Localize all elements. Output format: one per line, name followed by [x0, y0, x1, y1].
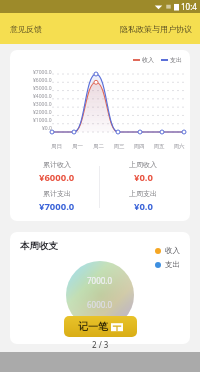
staticText: 6000.0 — [87, 299, 113, 310]
staticText: ¥6000.0 — [33, 77, 52, 85]
staticText: 收入 — [142, 56, 154, 64]
staticText: 周二 — [88, 143, 109, 150]
staticText: ¥0.0 — [134, 200, 153, 213]
staticText: 累计支出 — [43, 189, 71, 198]
staticText: ¥7000.0 — [39, 200, 75, 213]
staticText: ¥2000.0 — [33, 109, 52, 117]
staticText: 支出 — [165, 260, 180, 269]
staticText: ¥3000.0 — [33, 101, 52, 109]
staticText: ¥0.0 — [42, 125, 52, 132]
staticText: 本周收支 — [20, 240, 58, 252]
staticText: 周一 — [67, 143, 88, 150]
staticText: 周六 — [169, 143, 189, 150]
staticText: ¥4000.0 — [33, 93, 52, 101]
staticText: 周四 — [129, 143, 149, 150]
staticText: 意见反馈 — [10, 24, 42, 34]
staticText: 2 / 3 — [92, 339, 109, 350]
staticText: 周日 — [46, 143, 67, 150]
staticText: 上周收入 — [129, 160, 157, 169]
button[interactable]: 意见反馈 — [0, 20, 48, 38]
staticText: ¥7000.0 — [33, 69, 52, 77]
staticText: 10:4 — [181, 1, 197, 12]
staticText: 隐私政策与用户协议 — [120, 24, 192, 34]
staticText: 7000.0 — [87, 275, 113, 286]
staticText: ¥6000.0 — [39, 171, 75, 184]
button[interactable]: 隐私政策与用户协议 — [114, 20, 200, 38]
staticText: 周三 — [109, 143, 129, 150]
staticText: ¥1000.0 — [33, 117, 52, 125]
staticText: 收入 — [165, 246, 180, 255]
staticText: ¥0.0 — [134, 171, 153, 184]
staticText: 支出 — [170, 56, 182, 64]
button[interactable]: 记一笔 — [64, 316, 137, 337]
staticText: 上周支出 — [129, 189, 157, 198]
staticText: 记一笔 — [78, 320, 108, 333]
staticText: ¥5000.0 — [33, 85, 52, 93]
staticText: 累计收入 — [43, 160, 71, 169]
staticText: 周五 — [149, 143, 169, 150]
